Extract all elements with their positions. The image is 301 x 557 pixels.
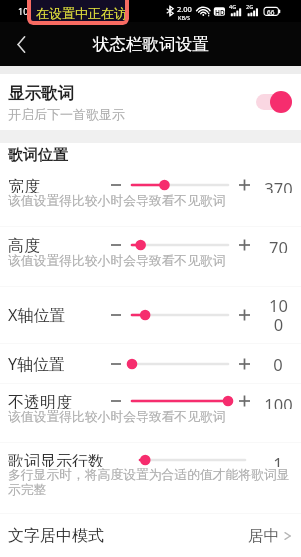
staticText: 宽度 bbox=[8, 177, 40, 193]
staticText: 66 bbox=[267, 8, 275, 17]
other: 滑块 bbox=[132, 394, 228, 408]
button[interactable]: 增加 bbox=[239, 238, 250, 252]
staticText: 高度 bbox=[8, 236, 40, 253]
other: 滑块 bbox=[132, 238, 228, 252]
button[interactable]: 增加 bbox=[239, 357, 250, 371]
staticText: 370 bbox=[264, 177, 293, 193]
button[interactable]: 增加 bbox=[239, 308, 250, 322]
button[interactable]: 显示歌词开关 bbox=[256, 91, 292, 113]
staticText: 不透明度 bbox=[8, 393, 72, 409]
staticText: 文字居中模式 bbox=[8, 526, 104, 546]
button[interactable]: 文字居中模式 bbox=[0, 514, 301, 557]
button[interactable]: 显示歌词 bbox=[0, 74, 301, 130]
staticText: 开启后下一首歌显示 bbox=[8, 106, 125, 122]
staticText: 1 bbox=[273, 452, 283, 467]
staticText: 多行显示时，将高度设置为合适的值才能将歌词显示完整 bbox=[8, 467, 297, 498]
staticText: 状态栏歌词设置 bbox=[93, 34, 209, 55]
staticText: X轴位置 bbox=[8, 304, 66, 326]
button[interactable]: 返回 bbox=[4, 27, 38, 61]
staticText: 该值设置得比较小时会导致看不见歌词 bbox=[8, 253, 226, 269]
button[interactable]: 宽度 bbox=[0, 168, 301, 227]
staticText: HD bbox=[215, 8, 225, 17]
other: 滑块 bbox=[140, 453, 245, 467]
staticText: 居中 bbox=[248, 526, 279, 546]
button[interactable]: 歌词显示行数 bbox=[0, 443, 301, 514]
staticText: 2G bbox=[246, 3, 254, 10]
button[interactable]: 减少 bbox=[111, 308, 121, 322]
button[interactable]: 在设置中正在访问 bbox=[27, 0, 129, 25]
button[interactable]: 减少 bbox=[111, 394, 121, 408]
button[interactable]: 不透明度 bbox=[0, 384, 301, 443]
button[interactable]: 高度 bbox=[0, 227, 301, 287]
staticText: Y轴位置 bbox=[8, 353, 66, 375]
button[interactable]: 减少 bbox=[111, 238, 121, 252]
staticText: 显示歌词 bbox=[8, 83, 74, 104]
staticText: KB/S bbox=[178, 14, 191, 21]
staticText: 在设置中正在访问 bbox=[36, 5, 129, 21]
staticText: 4G bbox=[229, 3, 237, 10]
staticText: 歌词显示行数 bbox=[8, 452, 104, 467]
button[interactable]: 减少 bbox=[111, 178, 121, 192]
button[interactable]: 减少 bbox=[111, 357, 121, 371]
button[interactable]: Y轴位置 bbox=[0, 344, 301, 384]
staticText: 100 bbox=[264, 393, 293, 409]
staticText: 该值设置得比较小时会导致看不见歌词 bbox=[8, 193, 226, 209]
staticText: 歌词位置 bbox=[8, 146, 68, 165]
button[interactable]: X轴位置 bbox=[0, 287, 301, 344]
staticText: 2.00 bbox=[177, 4, 192, 14]
staticText: 70 bbox=[269, 236, 288, 253]
staticText: 该值设置得比较小时会导致看不见歌词 bbox=[8, 409, 226, 425]
button[interactable]: 增加 bbox=[239, 394, 250, 408]
staticText: 10 bbox=[18, 5, 29, 17]
staticText: 0 bbox=[273, 353, 283, 375]
staticText: 10 0 bbox=[269, 294, 288, 336]
button[interactable]: 增加 bbox=[239, 178, 250, 192]
other: 滑块 bbox=[132, 308, 228, 322]
other: 滑块 bbox=[132, 357, 228, 371]
other: 滑块 bbox=[132, 178, 228, 192]
